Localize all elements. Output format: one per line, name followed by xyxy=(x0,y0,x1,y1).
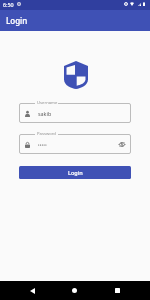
button[interactable]: Toggle password visibility xyxy=(116,138,128,150)
staticText: Login xyxy=(6,15,28,26)
staticText: sakib xyxy=(38,110,52,117)
button[interactable]: Home xyxy=(67,283,82,298)
button[interactable]: Login xyxy=(19,166,131,179)
staticText: 6:50 xyxy=(3,1,14,8)
button[interactable]: Back xyxy=(25,283,40,298)
button[interactable]: Recents xyxy=(110,283,125,298)
staticText: Login xyxy=(68,169,83,176)
staticText: Username xyxy=(37,100,58,106)
staticText: Password xyxy=(37,131,56,137)
